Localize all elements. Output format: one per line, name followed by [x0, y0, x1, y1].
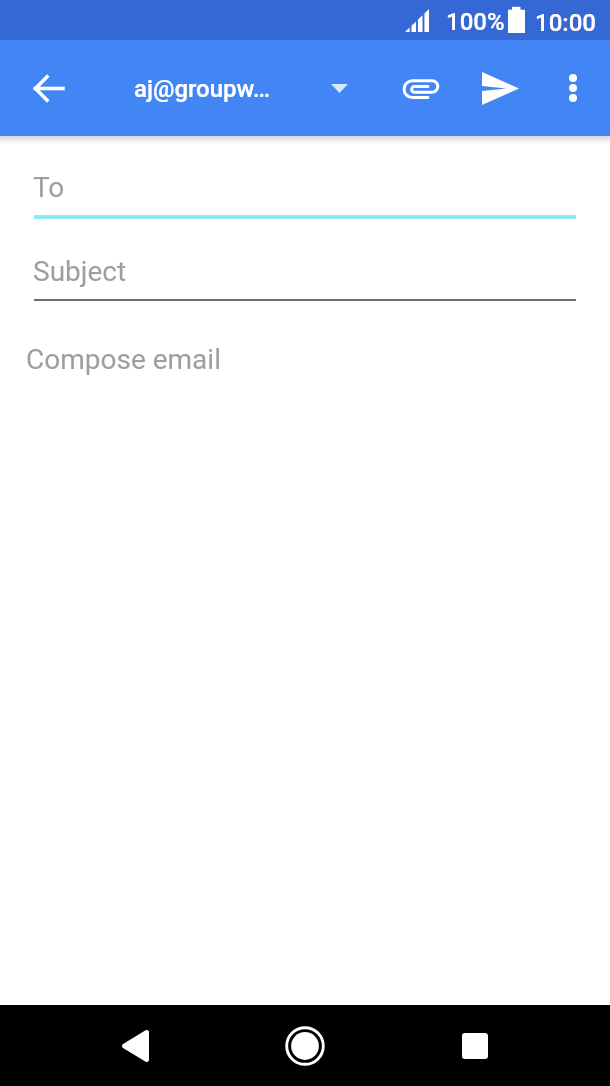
button[interactable]: Expand recipients — [309, 58, 369, 118]
button[interactable]: Home — [264, 1005, 345, 1086]
staticText: Compose email — [26, 343, 221, 376]
button[interactable]: More options — [539, 54, 607, 122]
button[interactable]: To — [34, 152, 576, 223]
staticText: 100% — [446, 8, 505, 36]
button[interactable]: Back — [95, 1005, 176, 1086]
staticText: To — [33, 171, 65, 204]
button[interactable]: Recent apps — [434, 1005, 515, 1086]
staticText: Subject — [33, 255, 127, 288]
button[interactable]: Attach file — [387, 55, 455, 123]
button[interactable]: Send — [466, 54, 534, 122]
button[interactable]: aj@groupw… — [134, 75, 270, 103]
button[interactable]: Back — [14, 54, 82, 122]
button[interactable]: Subject — [34, 237, 576, 301]
button[interactable]: Compose email — [26, 321, 584, 981]
staticText: 10:00 — [535, 9, 596, 37]
